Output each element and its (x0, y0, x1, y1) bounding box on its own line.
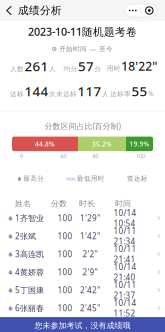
staticText: 6张丽春 (15, 303, 44, 313)
button[interactable]: 6张丽春 (0, 299, 165, 317)
staticText: 用时 (107, 64, 121, 72)
button[interactable]: 5丁国康 (0, 281, 165, 299)
staticText: 100 (57, 303, 72, 313)
staticText: 时长 (79, 199, 95, 208)
staticText: 10/14 21:40 (113, 261, 136, 283)
staticText: 达标 (10, 90, 24, 98)
staticText: — (89, 45, 96, 53)
staticText: 开始时间 (59, 45, 87, 53)
staticText: 261 (24, 57, 48, 75)
staticText: 未达标 (56, 90, 77, 98)
button[interactable]: 4黄娇蓉 (0, 263, 165, 281)
button[interactable]: 菜单 (125, 4, 157, 17)
staticText: 10/11 21:37 (113, 279, 136, 301)
staticText: 分 (94, 65, 101, 73)
staticText: 10/14 11:52 (113, 297, 136, 319)
staticText: 4黄娇蓉 (15, 267, 44, 277)
staticText: 达标率 (110, 90, 131, 98)
staticText: 100 (57, 285, 72, 295)
staticText: 最低用时 (77, 174, 105, 183)
staticText: 18'22" (121, 58, 157, 74)
staticText: 117 (77, 82, 101, 100)
staticText: 100 (136, 153, 145, 160)
staticText: min (66, 175, 75, 182)
staticText: 次 (49, 90, 56, 98)
staticText: 10/14 10:54 (113, 207, 136, 229)
staticText: 姓名 (15, 199, 31, 208)
staticText: 最高分 (23, 174, 44, 183)
staticText: 2'45" (80, 303, 100, 313)
staticText: 2张斌 (15, 231, 36, 241)
staticText: 80 (92, 153, 98, 160)
staticText: 100 (57, 213, 72, 223)
staticText: 成绩分析 (18, 4, 62, 17)
staticText: 均分 (63, 65, 77, 73)
staticText: 44.8% (35, 139, 55, 148)
staticText: 2023-10-11随机题考卷 (28, 24, 137, 39)
staticText: 19.9% (129, 139, 149, 148)
staticText: 2'2" (82, 249, 97, 259)
staticText: 3高连凯 (15, 249, 44, 259)
staticText: 人 (102, 90, 109, 98)
staticText: 分数区间占比(百分制) (44, 121, 120, 131)
staticText: 查达标 (127, 174, 148, 183)
staticText: 人 (49, 65, 56, 73)
staticText: 分数 (51, 199, 67, 208)
staticText: 60 (60, 153, 66, 160)
staticText: 至今 (99, 45, 113, 53)
button[interactable]: 2张斌 (0, 227, 165, 245)
staticText: 2'42" (80, 285, 100, 295)
button[interactable]: 3高连凯 (0, 245, 165, 263)
staticText: 1齐智业 (15, 213, 44, 223)
button[interactable]: 您未参加考试，没有成绩哦 (0, 317, 165, 332)
staticText: 100 (57, 231, 72, 241)
staticText: 35.2% (92, 139, 112, 148)
staticText: 时间 (115, 199, 131, 208)
staticText: 57 (78, 57, 94, 75)
staticText: 10/11 21:41 (113, 243, 136, 265)
staticText: 5丁国康 (15, 285, 44, 295)
staticText: 1'42" (80, 231, 100, 241)
staticText: 2'9" (82, 267, 97, 277)
staticText: 144 (24, 82, 48, 100)
staticText: 人数 (10, 65, 24, 73)
button[interactable]: 返回 (0, 0, 18, 21)
staticText: 100 (57, 249, 72, 259)
staticText: 10/11 21:34 (113, 225, 136, 247)
staticText: 55 (131, 82, 147, 100)
staticText: 1'29" (80, 213, 100, 223)
staticText: 100 (57, 267, 72, 277)
staticText: % (148, 89, 154, 98)
staticText: 0 (20, 153, 23, 160)
button[interactable]: 1齐智业 (0, 209, 165, 227)
staticText: 您未参加考试，没有成绩哦 (34, 321, 130, 330)
